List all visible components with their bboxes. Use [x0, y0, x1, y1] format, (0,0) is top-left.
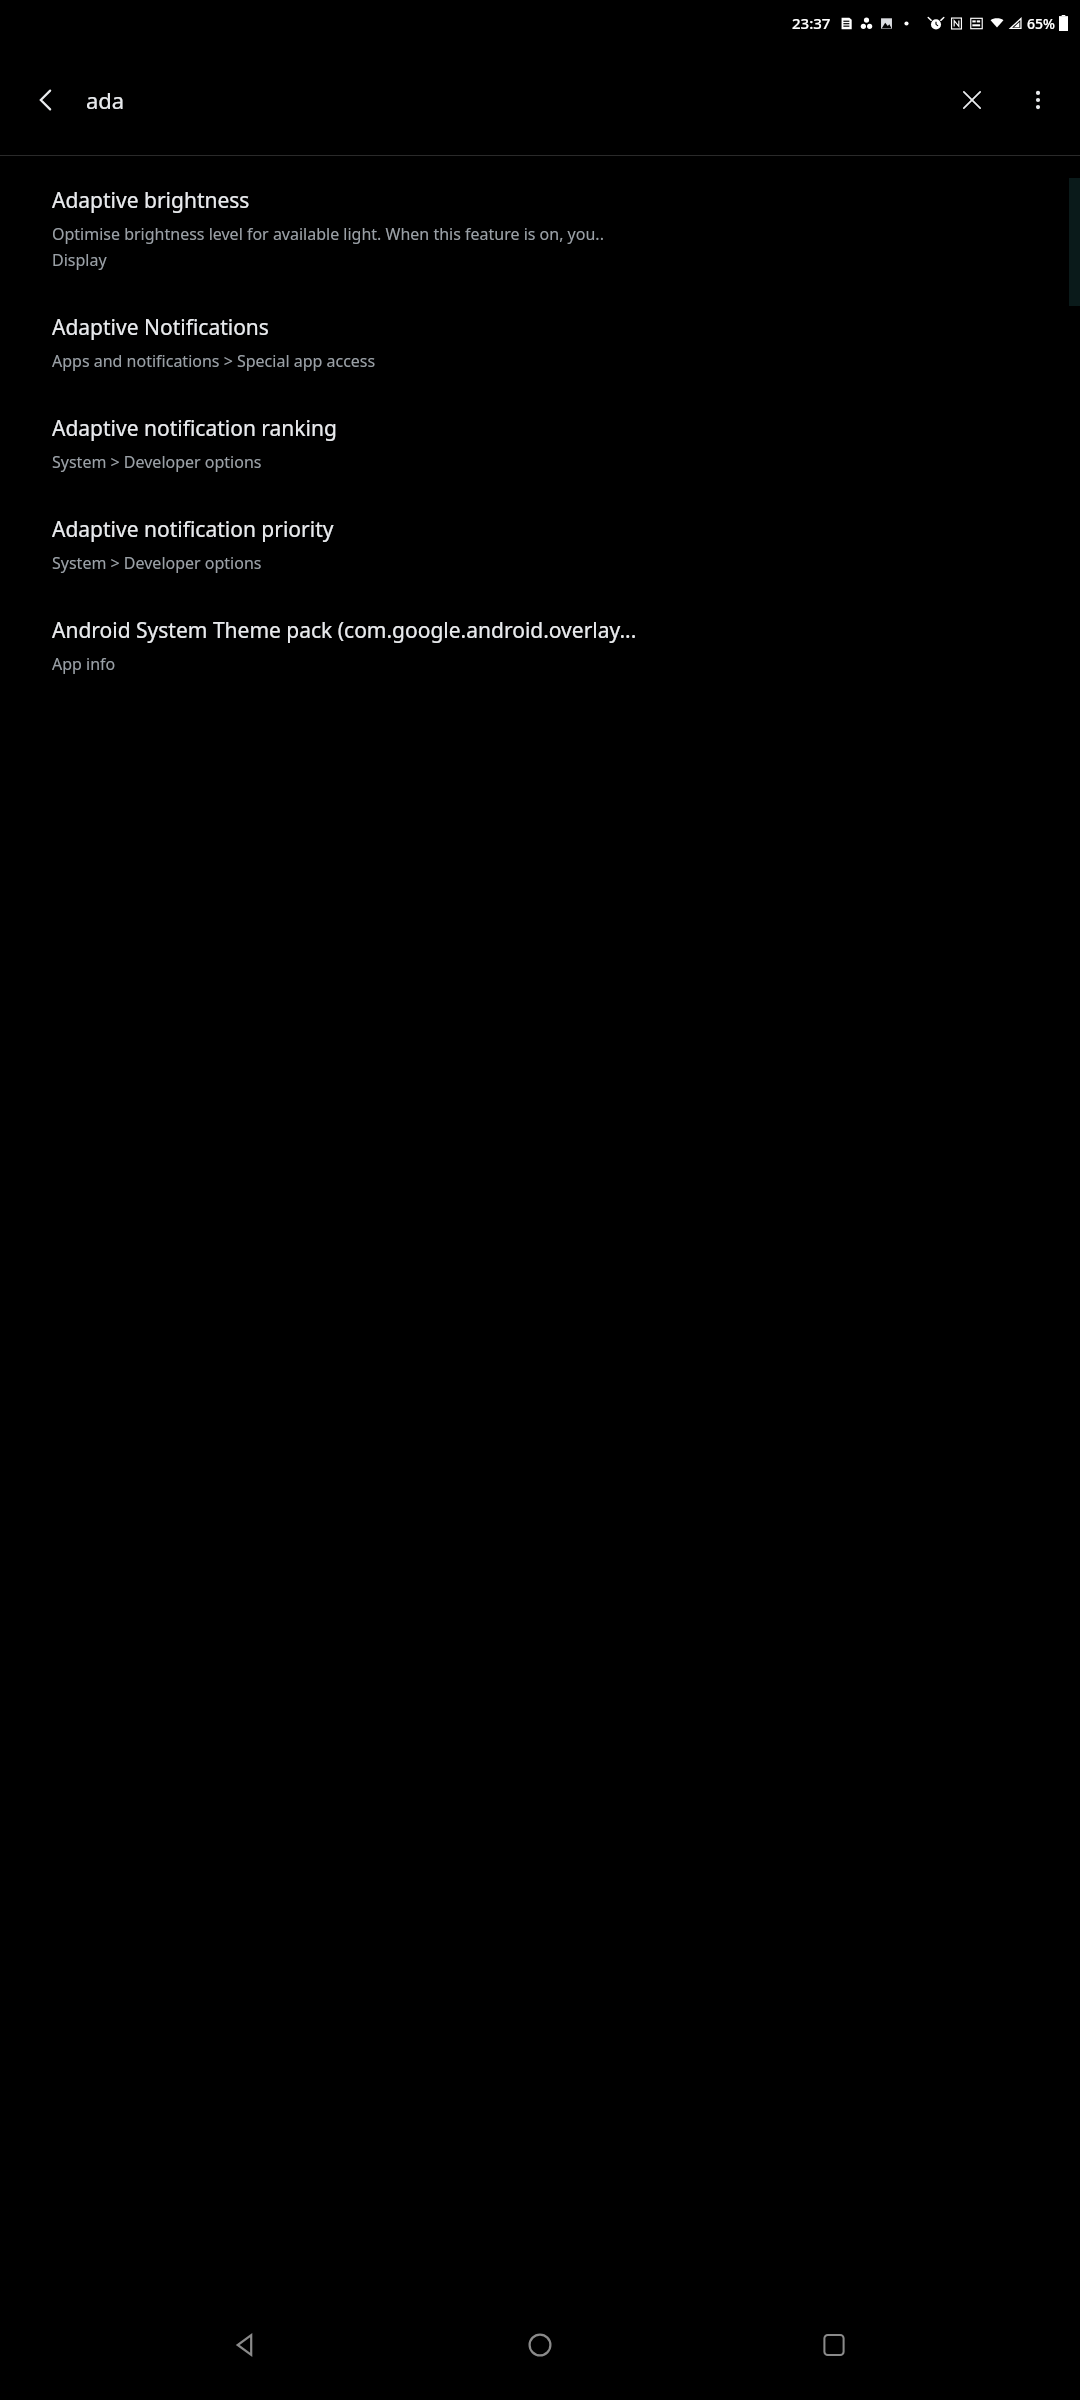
- staticText: System > Developer options: [52, 451, 262, 473]
- staticText: Apps and notifications > Special app acc…: [52, 350, 376, 372]
- staticText: ada: [86, 85, 125, 115]
- button[interactable]: Android System Theme pack (com.google.an…: [0, 610, 1080, 681]
- staticText: App info: [52, 653, 116, 675]
- staticText: Optimise brightness level for available …: [52, 223, 604, 245]
- staticText: 65%: [1027, 14, 1055, 33]
- button[interactable]: More options: [1010, 72, 1066, 128]
- button[interactable]: Home: [492, 2297, 588, 2393]
- button[interactable]: Recent apps: [786, 2297, 882, 2393]
- button[interactable]: Adaptive notification ranking: [0, 408, 1080, 479]
- staticText: Adaptive Notifications: [52, 313, 269, 342]
- button[interactable]: Clear search: [944, 72, 1000, 128]
- staticText: Android System Theme pack (com.google.an…: [52, 616, 637, 645]
- button[interactable]: Back: [198, 2297, 294, 2393]
- staticText: System > Developer options: [52, 552, 262, 574]
- staticText: Adaptive notification priority: [52, 515, 334, 544]
- staticText: Display: [52, 249, 107, 271]
- button[interactable]: Adaptive Notifications: [0, 307, 1080, 378]
- button[interactable]: Adaptive notification priority: [0, 509, 1080, 580]
- button[interactable]: Back: [18, 72, 74, 128]
- staticText: Adaptive notification ranking: [52, 414, 337, 443]
- staticText: 23:37: [792, 13, 831, 33]
- button[interactable]: Adaptive brightness: [0, 180, 1080, 277]
- staticText: Adaptive brightness: [52, 186, 250, 215]
